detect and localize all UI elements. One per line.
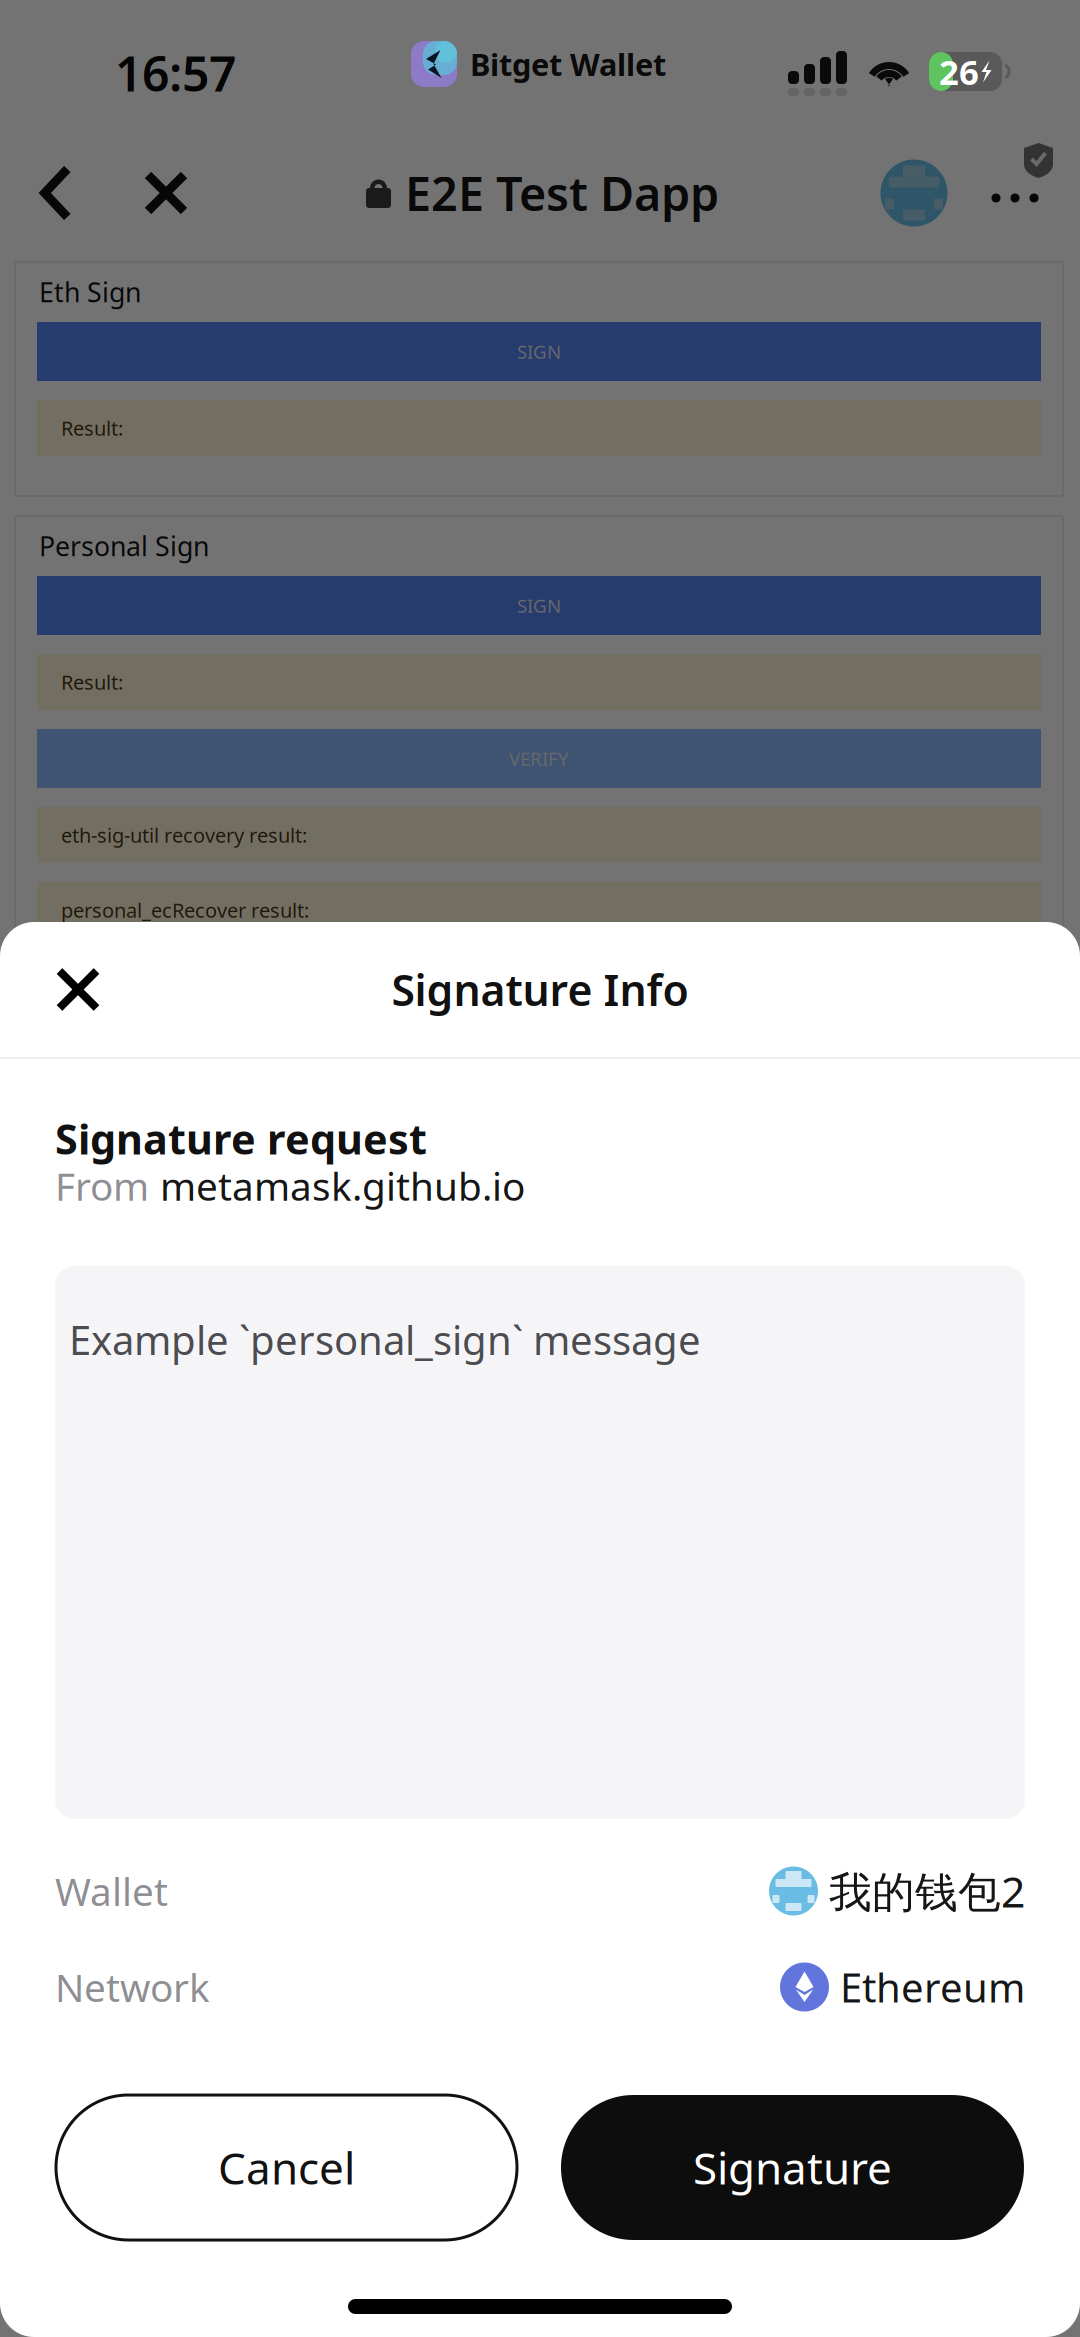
button[interactable]: More: [968, 151, 1062, 245]
staticText: Bitget Wallet: [470, 44, 666, 84]
staticText: Personal Sign: [39, 528, 209, 564]
staticText: E2E Test Dapp: [405, 162, 719, 224]
staticText: From: [55, 1160, 149, 1211]
staticText: metamask.github.io: [160, 1160, 525, 1211]
staticText: Ethereum: [840, 1960, 1025, 2013]
staticText: Result:: [61, 669, 123, 695]
staticText: Signature: [693, 2138, 892, 2197]
staticText: Signature Info: [391, 961, 688, 1018]
button[interactable]: Close: [126, 146, 206, 240]
button[interactable]: Cancel: [56, 2095, 517, 2240]
staticText: SIGN: [517, 593, 561, 618]
staticText: eth-sig-util recovery result:: [61, 822, 307, 848]
button[interactable]: Signature: [561, 2095, 1024, 2240]
staticText: Signature request: [55, 1111, 427, 1166]
staticText: VERIFY: [509, 746, 569, 771]
staticText: Wallet: [55, 1865, 168, 1917]
staticText: SIGN: [517, 339, 561, 364]
staticText: personal_ecRecover result:: [61, 897, 309, 923]
button[interactable]: Account: [868, 146, 960, 240]
button[interactable]: E2E Test Dapp: [222, 146, 857, 240]
staticText: Example `personal_sign` message: [69, 1313, 701, 1366]
button[interactable]: Close: [30, 941, 126, 1037]
staticText: Eth Sign: [39, 274, 141, 310]
staticText: Result:: [61, 415, 123, 441]
staticText: 26: [939, 48, 979, 94]
button[interactable]: Back: [17, 146, 95, 240]
staticText: Cancel: [218, 2138, 355, 2197]
staticText: 16:57: [115, 41, 236, 105]
staticText: 我的钱包2: [829, 1863, 1025, 1919]
staticText: Network: [55, 1961, 210, 2013]
